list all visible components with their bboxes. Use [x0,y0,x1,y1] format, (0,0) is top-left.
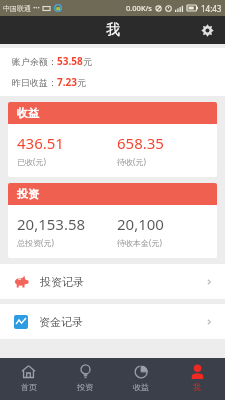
button[interactable]: 投资 [57,358,113,400]
staticText: 收益 [17,106,39,120]
staticText: 投资记录 [40,275,84,289]
button[interactable]: Settings [197,20,217,40]
staticText: ••• [33,4,40,12]
staticText: 658.35 [117,133,164,153]
button[interactable]: 资金记录 [0,304,225,339]
staticText: 0.00K/s [126,3,152,13]
button[interactable]: 投资记录 [0,264,225,299]
staticText: 待收(元) [117,156,146,167]
staticText: 53.58 [57,54,83,68]
staticText: 资金记录 [39,315,83,329]
staticText: 首页 [21,382,37,392]
staticText: 昨日收益： [12,77,57,88]
staticText: 收益 [133,382,149,392]
staticText: 7.23 [57,75,77,89]
button[interactable]: 收益 [113,358,169,400]
staticText: 元 [77,77,86,88]
staticText: 投资 [17,187,39,201]
staticText: 中国联通 [3,4,31,13]
staticText: 已收(元) [17,156,46,167]
button[interactable]: 我 [169,358,225,400]
staticText: 20,100 [117,214,164,234]
staticText: 总投资(元) [17,237,54,248]
staticText: 14:43 [201,3,222,14]
staticText: 我 [106,21,120,39]
staticText: 20,153.58 [17,214,86,234]
staticText: 我 [193,382,201,392]
staticText: 账户余额： [12,56,57,67]
staticText: 436.51 [17,133,64,153]
button[interactable]: 首页 [0,358,57,400]
staticText: 待收本金(元) [117,237,162,248]
staticText: 投资 [77,382,93,392]
staticText: 元 [83,56,92,67]
